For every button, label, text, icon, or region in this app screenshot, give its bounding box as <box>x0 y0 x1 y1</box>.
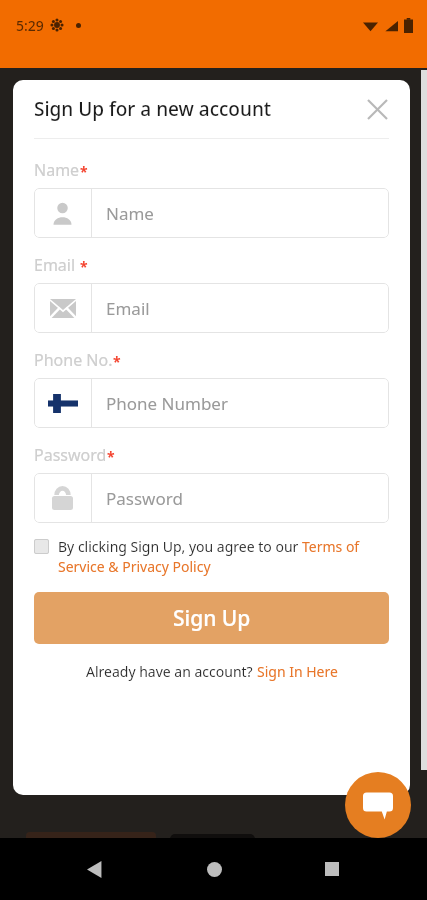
staticText: Phone No. <box>34 349 113 371</box>
staticText: Password <box>106 487 183 510</box>
staticText: Email <box>34 254 80 276</box>
staticText: Sign Up <box>173 604 251 633</box>
staticText: Name <box>106 202 154 225</box>
staticText: * <box>113 352 121 371</box>
staticText: Sign In Here <box>257 662 338 681</box>
button[interactable]: Recents <box>308 845 356 893</box>
button[interactable]: Already have an account? <box>86 662 338 681</box>
staticText: Password <box>34 444 107 466</box>
staticText: Already have an account? <box>86 662 257 681</box>
button[interactable]: Home <box>190 845 238 893</box>
button[interactable]: Close <box>358 90 396 128</box>
staticText: By clicking Sign Up, you agree to our Te… <box>58 537 389 576</box>
staticText: Name <box>34 159 80 181</box>
button[interactable]: Back <box>71 845 119 893</box>
button[interactable]: Name <box>34 188 389 238</box>
staticText: 5:29 <box>16 16 44 35</box>
button[interactable]: Phone Number <box>34 378 389 428</box>
button[interactable]: Sign Up <box>34 592 389 644</box>
staticText: Sign Up for a new account <box>34 96 272 122</box>
button[interactable]: Email <box>34 283 389 333</box>
button[interactable]: By clicking Sign Up, you agree to our Te… <box>34 537 389 576</box>
staticText: * <box>80 257 88 276</box>
staticText: * <box>80 162 88 181</box>
button[interactable]: Password <box>34 473 389 523</box>
button[interactable]: Chat <box>345 772 411 838</box>
staticText: * <box>107 447 115 466</box>
staticText: Email <box>106 297 150 320</box>
staticText: Phone Number <box>106 392 228 415</box>
